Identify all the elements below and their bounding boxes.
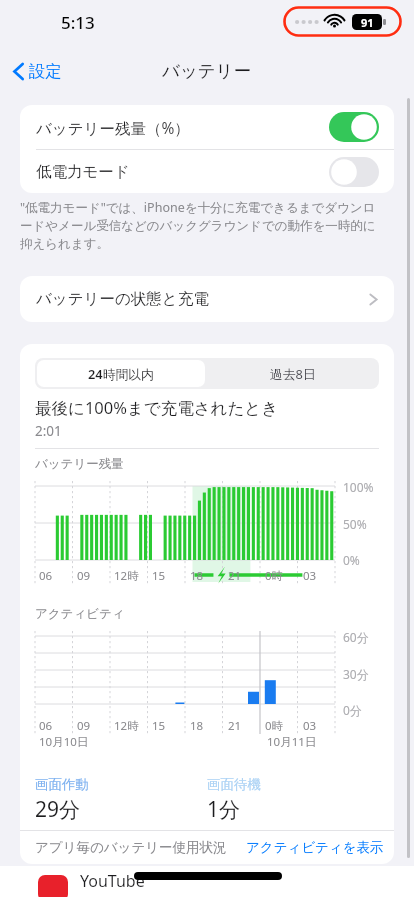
staticText: アクティビティを表示 xyxy=(246,839,384,856)
staticText: 15 xyxy=(152,718,166,734)
staticText: 18 xyxy=(190,568,204,584)
button[interactable]: 設定 xyxy=(0,55,72,88)
staticText: バッテリー残量（%） xyxy=(36,117,190,138)
staticText: YouTube xyxy=(80,870,145,892)
staticText: アクティビティ xyxy=(35,606,125,622)
staticText: 5:13 xyxy=(61,11,95,34)
staticText: "低電力モード"では、iPhoneを十分に充電できるまでダウンロードやメール受信… xyxy=(20,199,384,252)
staticText: 18 xyxy=(190,718,204,734)
staticText: 画面待機 xyxy=(207,776,261,793)
other: On xyxy=(329,112,379,142)
staticText: 06 xyxy=(39,568,53,584)
staticText: 0時 xyxy=(265,718,284,734)
staticText: 03 xyxy=(303,718,317,734)
button[interactable]: バッテリーの状態と充電 xyxy=(20,276,394,322)
staticText: 0時 xyxy=(265,568,284,584)
staticText: 10月10日 xyxy=(39,734,89,750)
other: Off xyxy=(329,157,379,187)
staticText: 15 xyxy=(152,568,166,584)
staticText: 最後に100%まで充電されたとき xyxy=(35,396,279,419)
button[interactable]: 低電力モード xyxy=(20,150,394,193)
staticText: 画面作動 xyxy=(35,776,89,793)
staticText: 10月11日 xyxy=(267,734,317,750)
staticText: 過去8日 xyxy=(270,365,316,382)
staticText: 60分 xyxy=(343,629,369,645)
staticText: バッテリーの状態と充電 xyxy=(36,289,209,309)
staticText: 12時 xyxy=(114,568,139,584)
staticText: 12時 xyxy=(114,718,139,734)
button[interactable]: 24時間以内 xyxy=(37,360,205,387)
staticText: 06 xyxy=(39,718,53,734)
button[interactable]: アクティビティを表示 xyxy=(242,835,388,860)
staticText: バッテリー残量 xyxy=(35,456,124,472)
staticText: 2:01 xyxy=(35,422,62,440)
staticText: 30分 xyxy=(343,666,369,682)
staticText: バッテリー xyxy=(162,60,252,82)
staticText: 低電力モード xyxy=(36,162,130,182)
staticText: 21 xyxy=(228,718,242,734)
staticText: 21 xyxy=(228,568,242,584)
staticText: 0% xyxy=(343,552,360,568)
button[interactable]: 過去8日 xyxy=(207,358,379,389)
staticText: 29分 xyxy=(35,795,81,824)
staticText: 09 xyxy=(77,568,91,584)
staticText: 100% xyxy=(343,479,374,495)
staticText: 設定 xyxy=(29,61,62,82)
staticText: 03 xyxy=(303,568,317,584)
staticText: 91 xyxy=(361,15,374,30)
staticText: 09 xyxy=(77,718,91,734)
staticText: アプリ毎のバッテリー使用状況 xyxy=(35,839,227,856)
staticText: 1分 xyxy=(207,795,241,824)
staticText: 0分 xyxy=(343,702,362,718)
staticText: 50% xyxy=(343,516,367,532)
button[interactable]: バッテリー残量（%） xyxy=(20,105,394,149)
staticText: 24時間以内 xyxy=(88,365,154,382)
